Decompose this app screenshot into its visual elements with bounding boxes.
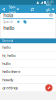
staticText: English (46, 1, 51, 17)
staticText: 9:41 (47, 1, 54, 4)
staticText: hello (2, 45, 10, 50)
staticText: General (2, 39, 13, 43)
button[interactable]: howdy (0, 76, 56, 84)
button[interactable]: hello there (0, 68, 56, 76)
staticText: Spanish (9, 4, 16, 15)
button[interactable]: hello (0, 43, 56, 52)
staticText: hola (3, 12, 13, 19)
button[interactable]: hi; hello (0, 52, 56, 60)
button[interactable]: Copy (23, 20, 27, 24)
button[interactable]: Spanish (7, 5, 21, 14)
staticText: hello there (2, 69, 20, 74)
staticText: Spanish (3, 20, 13, 24)
button[interactable]: Swap languages (29, 5, 36, 14)
staticText: hullo (2, 61, 10, 66)
button[interactable]: Clear (49, 13, 53, 17)
button[interactable]: Listen (16, 20, 21, 24)
button[interactable]: hullo (0, 60, 56, 68)
staticText: hello (3, 24, 14, 31)
button[interactable]: greetings (0, 84, 56, 92)
staticText: x (50, 13, 51, 17)
staticText: hi; hello (2, 53, 15, 58)
button[interactable]: Back (0, 5, 7, 14)
button[interactable]: Edit (45, 84, 52, 91)
button[interactable]: English (44, 5, 56, 14)
staticText: howdy (2, 77, 13, 82)
staticText: greetings (2, 85, 18, 90)
